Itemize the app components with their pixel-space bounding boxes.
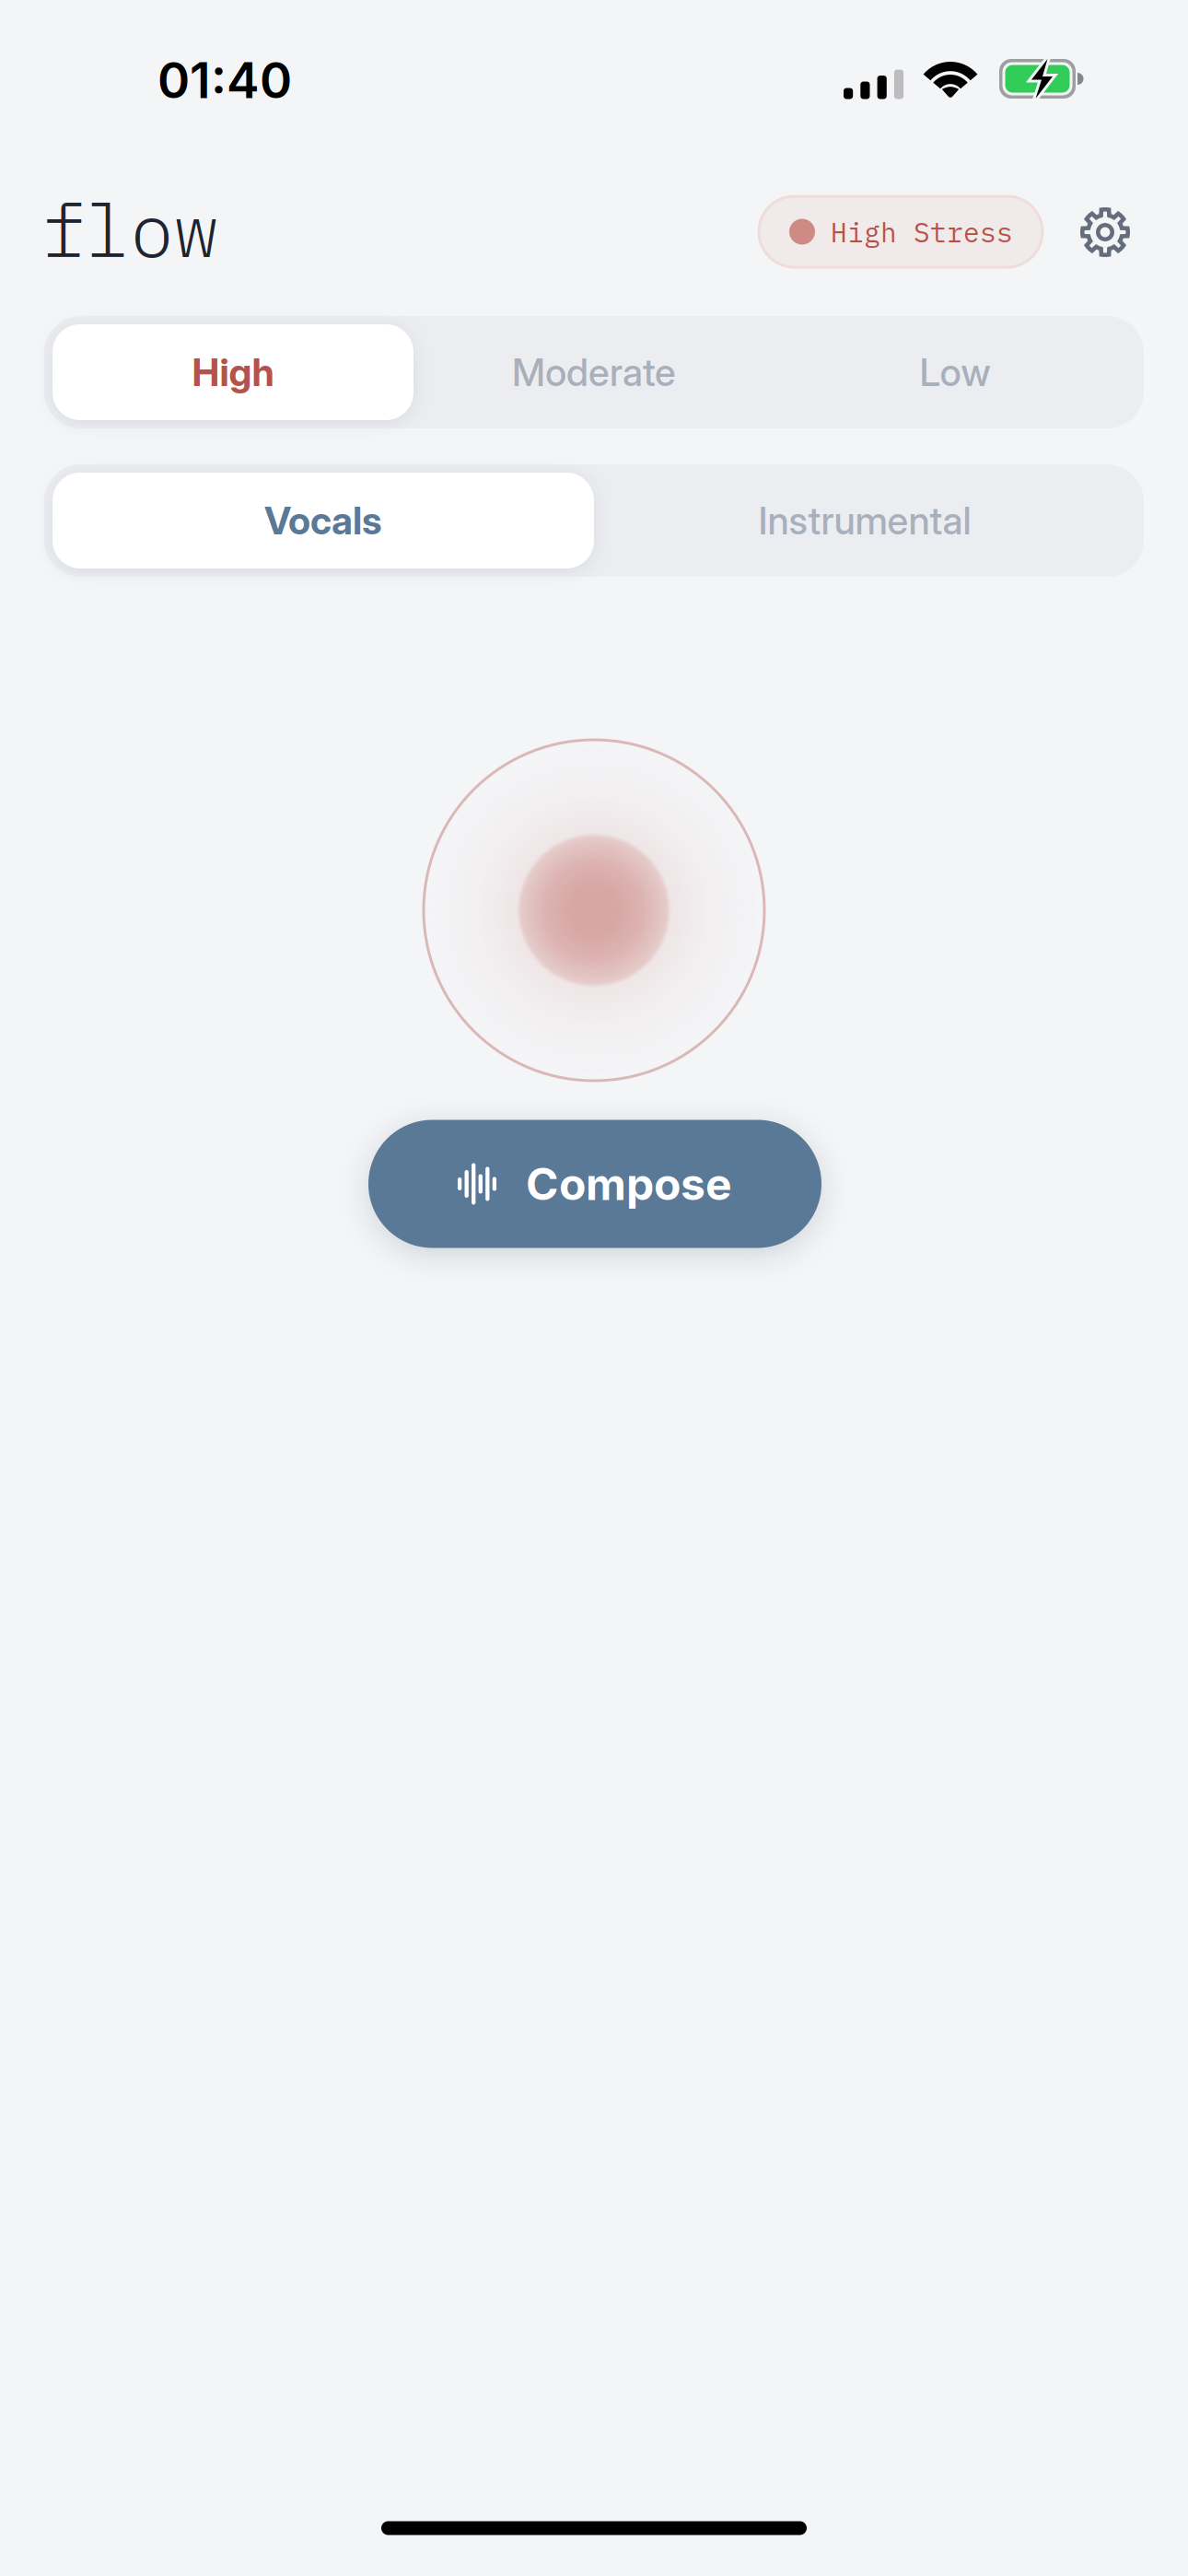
staticText: Moderate <box>512 349 676 395</box>
staticText: Compose <box>526 1157 732 1211</box>
button[interactable]: High Stress <box>759 196 1042 267</box>
button[interactable]: Instrumental <box>594 464 1136 577</box>
staticText: Vocals <box>264 498 382 544</box>
staticText: 01:40 <box>157 50 292 110</box>
button[interactable]: Low <box>775 316 1136 428</box>
staticText: High <box>192 349 274 395</box>
button[interactable]: Vocals <box>52 464 594 577</box>
staticText: Instrumental <box>758 498 971 544</box>
button[interactable]: Moderate <box>413 316 775 428</box>
staticText: Low <box>920 349 990 395</box>
staticText: flow <box>41 181 218 277</box>
button[interactable]: Settings <box>1066 193 1144 271</box>
staticText: High Stress <box>831 215 1013 250</box>
button[interactable]: Compose <box>368 1120 821 1248</box>
button[interactable]: High <box>52 316 413 428</box>
